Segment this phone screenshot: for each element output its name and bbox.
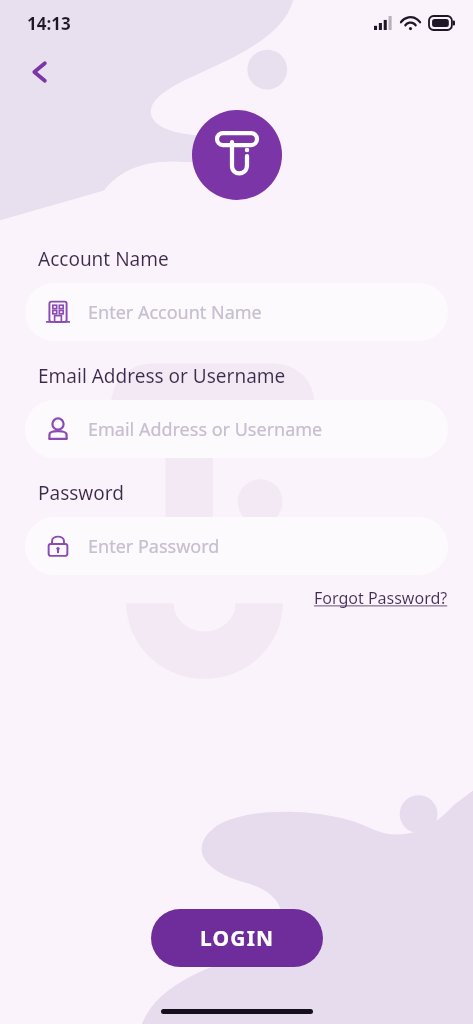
staticText: Forgot Password? — [314, 587, 448, 609]
button[interactable]: Enter Account Name — [25, 283, 448, 341]
button[interactable]: Back — [14, 46, 66, 98]
staticText: Enter Account Name — [88, 300, 262, 325]
staticText: Email Address or Username — [38, 363, 286, 389]
button[interactable]: Email Address or Username — [25, 400, 448, 458]
button[interactable]: Forgot Password? — [314, 587, 448, 609]
staticText: 14:13 — [27, 12, 71, 35]
button[interactable]: Enter Password — [25, 517, 448, 575]
staticText: Account Name — [38, 246, 169, 272]
staticText: LOGIN — [200, 924, 275, 953]
button[interactable]: LOGIN — [151, 909, 323, 967]
staticText: Password — [38, 480, 124, 506]
staticText: Enter Password — [88, 534, 220, 559]
staticText: Email Address or Username — [88, 417, 323, 442]
